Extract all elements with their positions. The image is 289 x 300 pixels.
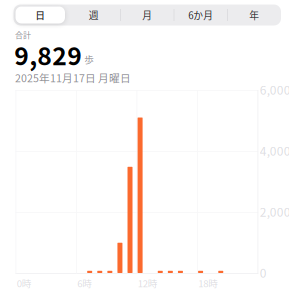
staticText: 6か月: [188, 8, 213, 22]
staticText: 6時: [77, 276, 92, 290]
staticText: 9,829: [14, 37, 82, 72]
staticText: 歩: [84, 52, 94, 66]
button[interactable]: 週: [67, 4, 120, 25]
staticText: 4,000: [260, 142, 289, 159]
staticText: 0: [260, 264, 267, 281]
staticText: 日: [35, 8, 45, 22]
button[interactable]: 月: [120, 4, 174, 25]
staticText: 6,000: [260, 81, 289, 98]
staticText: 0時: [17, 276, 32, 290]
button[interactable]: 6か月: [174, 4, 227, 25]
staticText: 合計: [15, 29, 31, 41]
staticText: 2025年11月17日 月曜日: [15, 70, 131, 85]
staticText: 週: [89, 8, 99, 22]
staticText: 月: [142, 8, 152, 22]
button[interactable]: 年: [227, 4, 281, 25]
staticText: 年: [249, 8, 259, 22]
staticText: 2,000: [260, 203, 289, 220]
button[interactable]: 日: [13, 4, 67, 25]
staticText: 12時: [138, 276, 158, 290]
staticText: 18時: [198, 276, 218, 290]
